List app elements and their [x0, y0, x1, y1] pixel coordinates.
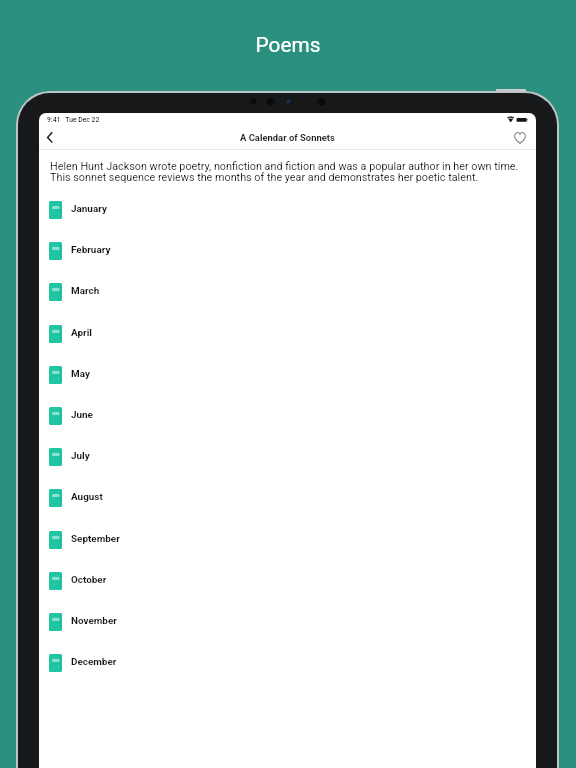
staticText: December — [71, 656, 117, 668]
button[interactable]: June — [39, 395, 536, 436]
button[interactable]: November — [39, 601, 536, 642]
staticText: Helen Hunt Jackson wrote poetry, nonfict… — [50, 160, 520, 183]
staticText: February — [71, 244, 111, 256]
staticText: August — [71, 491, 103, 503]
button[interactable]: December — [39, 642, 536, 683]
button[interactable]: July — [39, 436, 536, 477]
button[interactable]: September — [39, 519, 536, 560]
button[interactable]: May — [39, 354, 536, 395]
button[interactable]: January — [39, 189, 536, 230]
staticText: November — [71, 615, 117, 627]
button[interactable]: October — [39, 560, 536, 601]
staticText: March — [71, 285, 100, 297]
staticText: May — [71, 368, 90, 380]
staticText: July — [71, 450, 90, 462]
staticText: June — [71, 409, 93, 421]
staticText: A Calendar of Sonnets — [240, 132, 335, 143]
button[interactable]: Favorite — [509, 127, 531, 149]
staticText: October — [71, 574, 107, 586]
staticText: April — [71, 327, 92, 339]
button[interactable]: February — [39, 230, 536, 271]
staticText: 9:41 Tue Dec 22 — [47, 116, 100, 124]
staticText: January — [71, 203, 107, 215]
button[interactable]: March — [39, 271, 536, 312]
button[interactable]: August — [39, 477, 536, 518]
button[interactable]: Back — [39, 127, 61, 149]
button[interactable]: April — [39, 313, 536, 354]
staticText: September — [71, 533, 120, 545]
staticText: Poems — [0, 33, 576, 57]
